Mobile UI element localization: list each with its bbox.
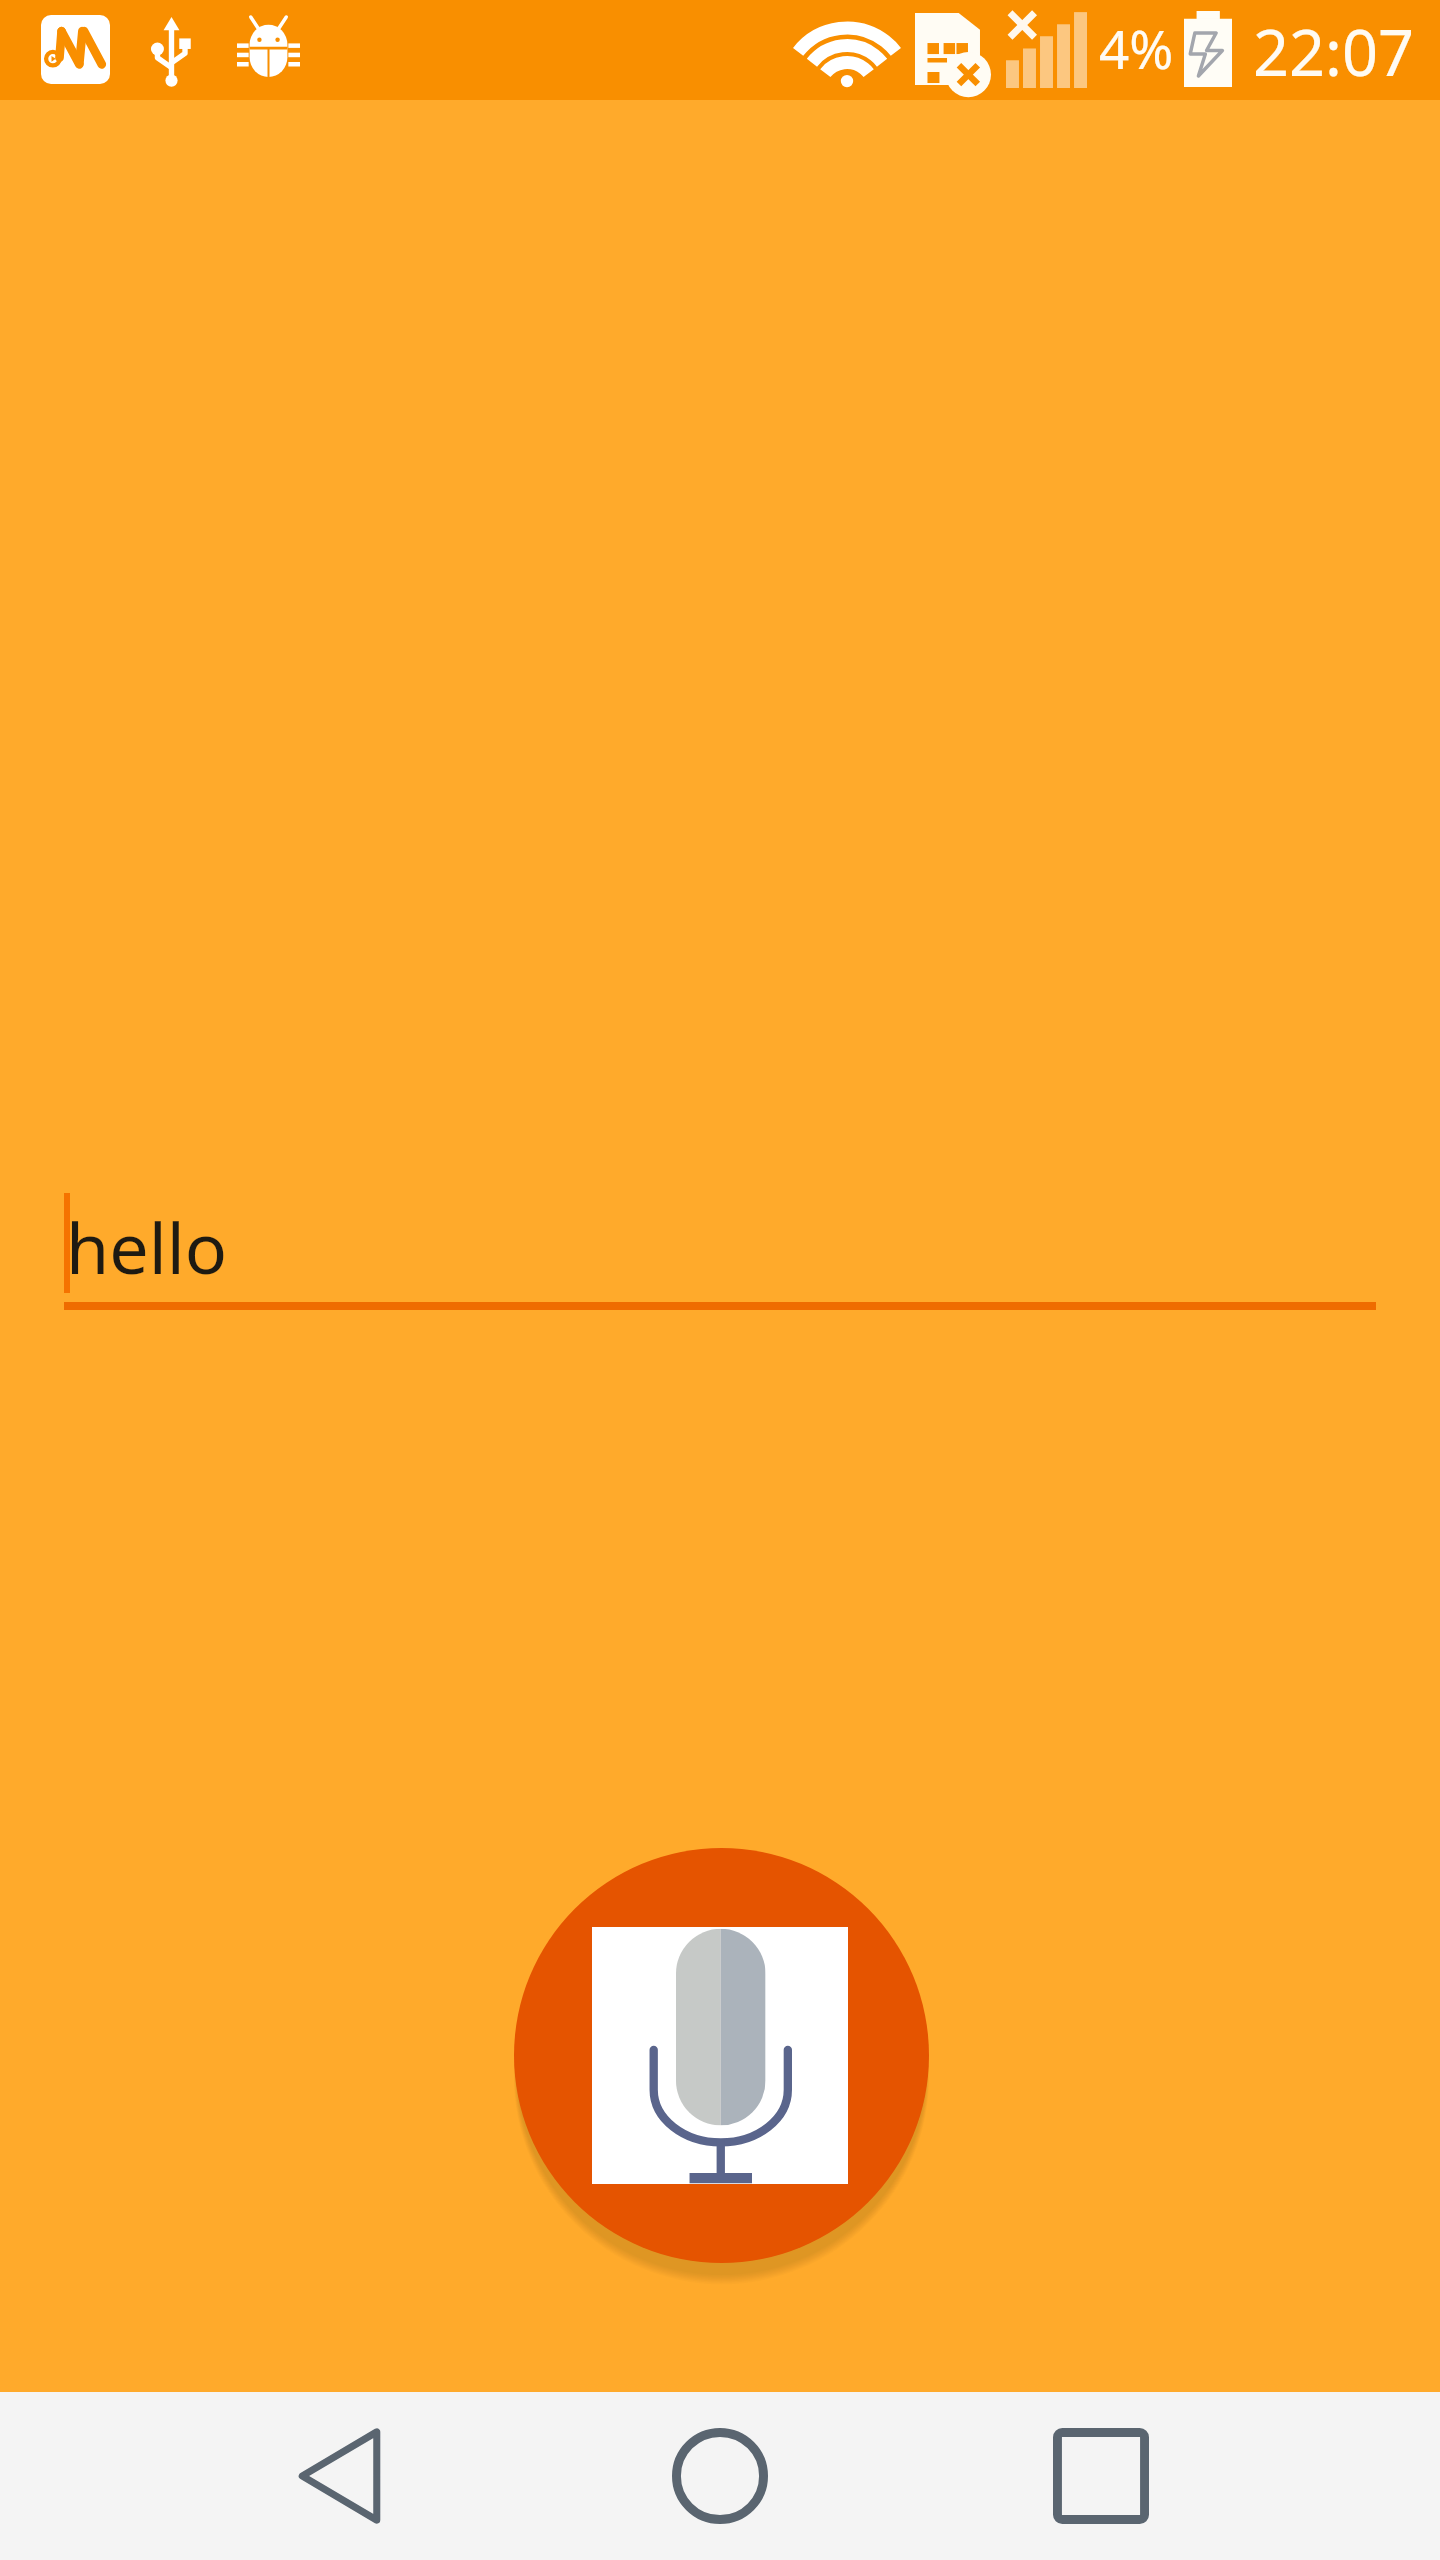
button[interactable]: Home xyxy=(612,2404,828,2548)
button[interactable]: hello xyxy=(0,1180,1440,1320)
staticText: hello xyxy=(66,1199,228,1294)
staticText: 22:07 xyxy=(1253,9,1415,95)
staticText: 4% xyxy=(1099,12,1174,84)
button[interactable]: Recent apps xyxy=(993,2404,1209,2548)
button[interactable]: Back xyxy=(231,2404,447,2548)
button[interactable]: Record voice xyxy=(514,1848,929,2263)
